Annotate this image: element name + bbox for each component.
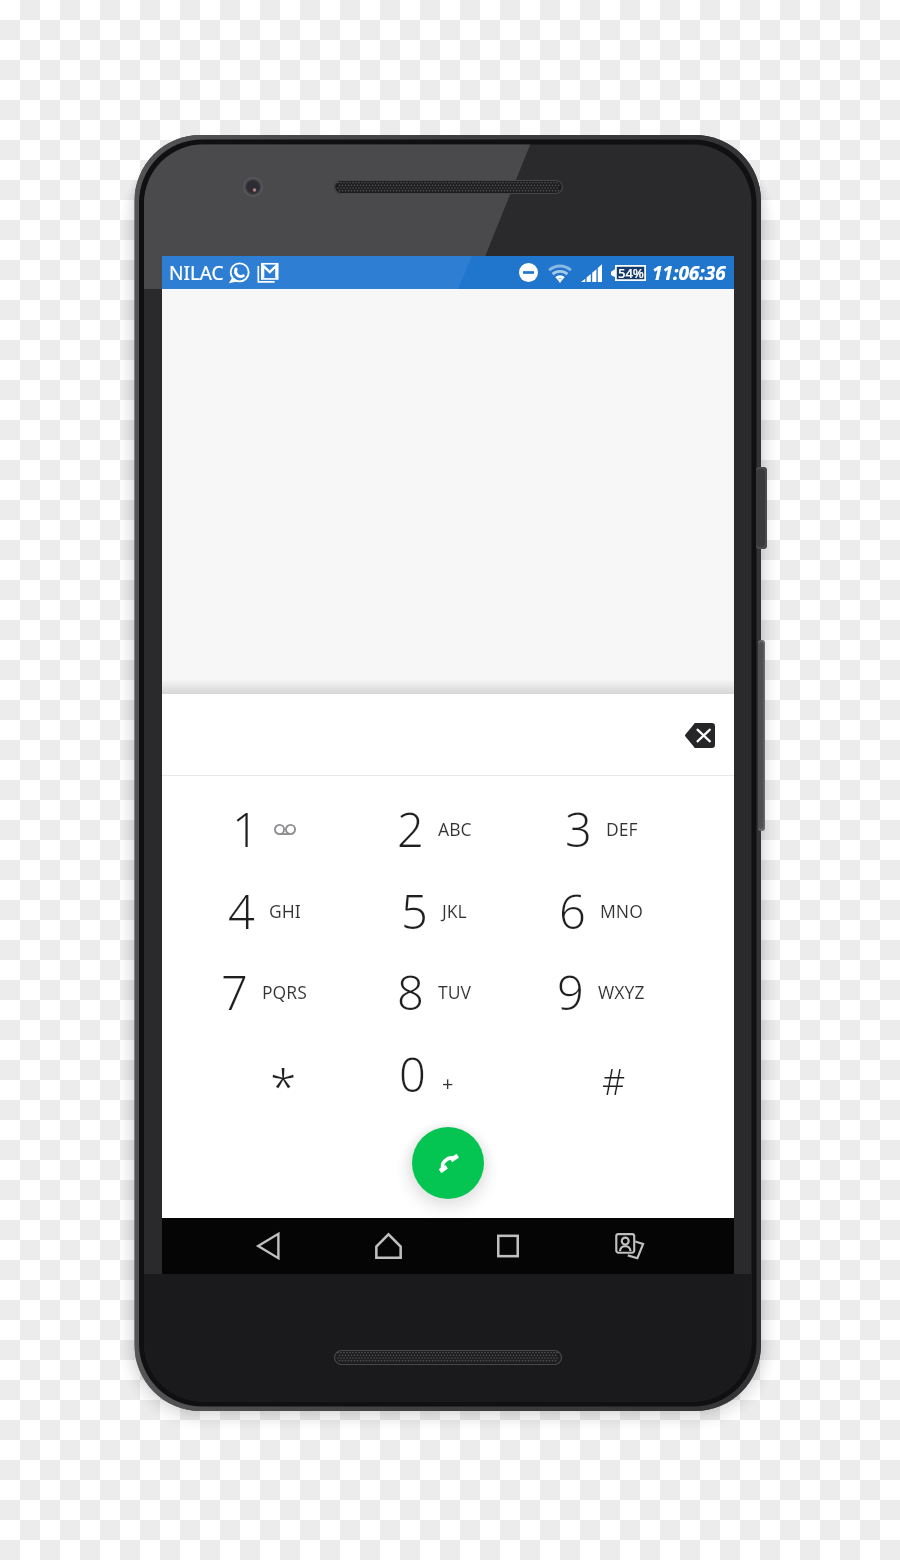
staticText: + xyxy=(442,1070,454,1097)
staticText: 4 xyxy=(228,879,255,943)
button[interactable]: 0 xyxy=(342,1033,510,1115)
staticText: 2 xyxy=(397,797,424,861)
button[interactable]: Home xyxy=(360,1218,416,1274)
staticText: TUV xyxy=(438,980,472,1004)
staticText: 54% xyxy=(618,264,644,282)
staticText: ABC xyxy=(438,817,472,841)
button[interactable]: Contacts xyxy=(601,1218,657,1274)
staticText: NILAC xyxy=(169,260,224,286)
staticText: DEF xyxy=(606,817,638,841)
staticText: 8 xyxy=(397,960,424,1024)
staticText: 5 xyxy=(401,879,428,943)
staticText: JKL xyxy=(442,899,467,923)
staticText: # xyxy=(602,1057,626,1106)
staticText: WXYZ xyxy=(598,980,645,1004)
staticText: 1 xyxy=(232,797,259,861)
button[interactable]: Back xyxy=(240,1218,296,1274)
staticText: GHI xyxy=(269,899,301,923)
button[interactable]: 7 xyxy=(180,951,348,1033)
button[interactable]: 4 xyxy=(180,870,348,952)
staticText: 11:06:36 xyxy=(652,260,726,286)
button[interactable]: Backspace xyxy=(672,708,726,762)
staticText: PQRS xyxy=(262,980,307,1004)
button[interactable]: 2 xyxy=(350,788,518,870)
button[interactable]: 1 xyxy=(180,788,348,870)
staticText: 0 xyxy=(399,1042,426,1106)
staticText: MNO xyxy=(600,899,643,923)
button[interactable]: 5 xyxy=(350,870,518,952)
button[interactable]: 9 xyxy=(517,951,685,1033)
staticText: 7 xyxy=(221,960,248,1024)
button[interactable]: 6 xyxy=(517,870,685,952)
button[interactable]: # xyxy=(530,1033,698,1115)
staticText: * xyxy=(270,1053,297,1118)
button[interactable]: 3 xyxy=(517,788,685,870)
button[interactable]: Recents xyxy=(480,1218,536,1274)
staticText: 6 xyxy=(559,879,586,943)
button[interactable]: 8 xyxy=(350,951,518,1033)
staticText: 3 xyxy=(565,797,592,861)
button[interactable]: * xyxy=(199,1033,367,1115)
staticText: 9 xyxy=(557,960,584,1024)
button[interactable]: Call xyxy=(412,1127,484,1199)
